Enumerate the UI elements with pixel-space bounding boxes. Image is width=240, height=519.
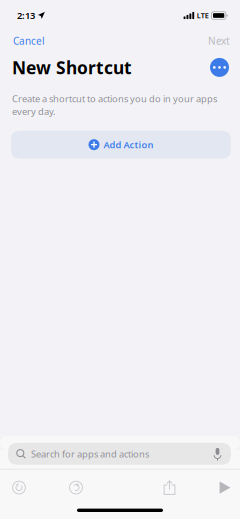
staticText: LTE: [197, 10, 209, 20]
button[interactable]: Run: [215, 481, 235, 494]
button[interactable]: More options: [210, 58, 229, 77]
button[interactable]: Undo: [8, 477, 30, 499]
button[interactable]: Add Action: [11, 131, 231, 159]
staticText: Next: [208, 34, 230, 48]
button[interactable]: Cancel: [11, 30, 47, 52]
staticText: Search for apps and actions: [31, 447, 149, 460]
staticText: New Shortcut: [12, 56, 132, 79]
staticText: Cancel: [13, 34, 45, 48]
staticText: 2:13: [17, 9, 35, 22]
staticText: Create a shortcut to actions you do in y…: [12, 92, 217, 118]
button[interactable]: Share: [159, 479, 180, 496]
button[interactable]: Redo: [65, 477, 87, 499]
staticText: Add Action: [103, 138, 153, 151]
button[interactable]: Next: [206, 30, 232, 52]
